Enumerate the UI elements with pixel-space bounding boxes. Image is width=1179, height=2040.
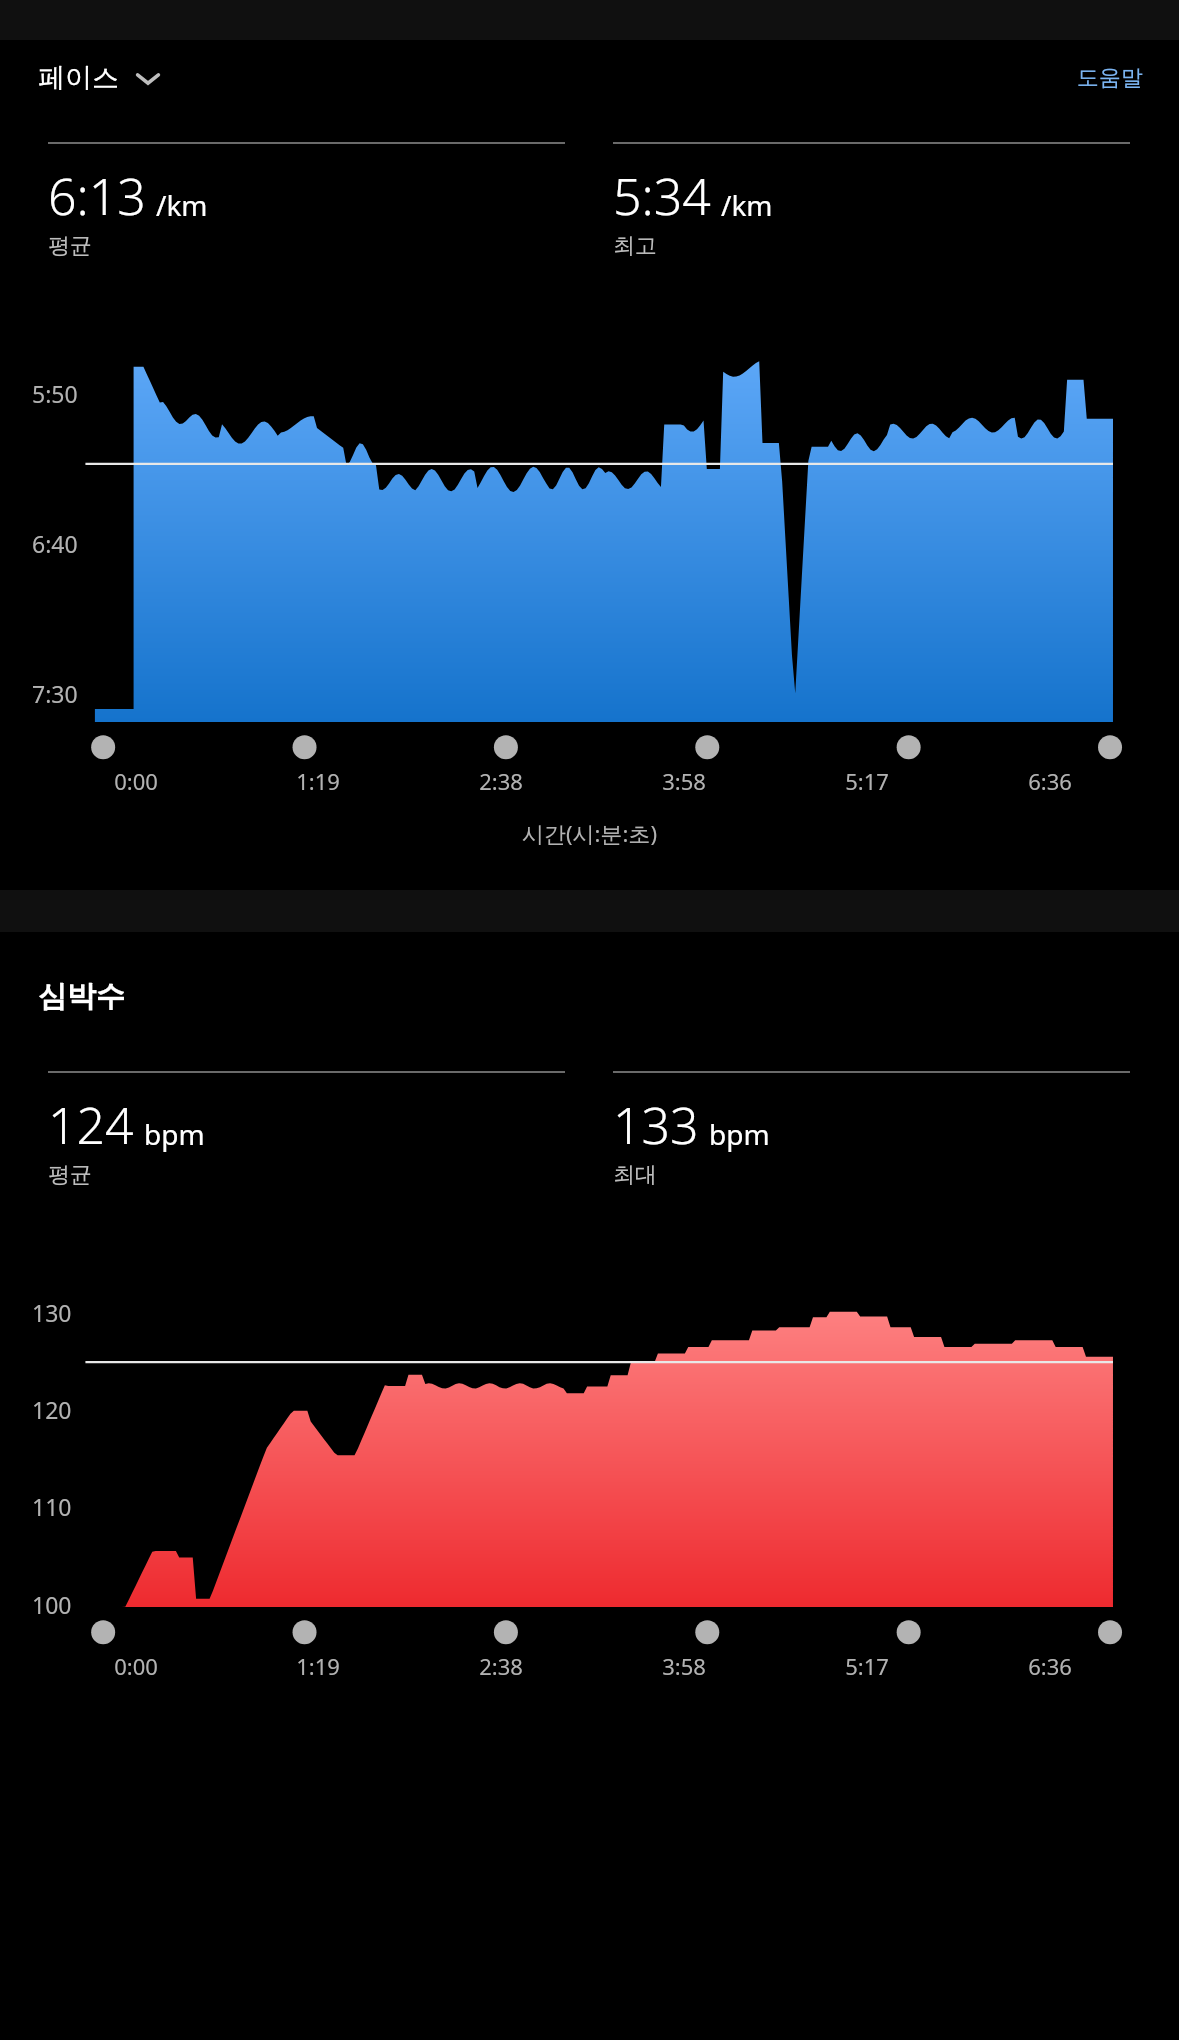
staticText: 7:30 <box>32 678 78 709</box>
staticText: bpm <box>709 1115 770 1153</box>
staticText: 평균 <box>48 232 92 260</box>
staticText: 최대 <box>613 1161 657 1189</box>
staticText: 6:36 <box>1028 1651 1072 1681</box>
staticText: 3:58 <box>662 1651 706 1681</box>
staticText: 도움말 <box>1077 64 1143 92</box>
staticText: 2:38 <box>479 1651 523 1681</box>
button[interactable]: 133 <box>613 1071 1130 1189</box>
staticText: 심박수 <box>38 978 125 1015</box>
staticText: 6:40 <box>32 528 78 559</box>
button[interactable]: 124 <box>48 1071 565 1189</box>
staticText: 0:00 <box>114 1651 158 1681</box>
staticText: 1:19 <box>296 1651 340 1681</box>
button[interactable]: 페이스 <box>34 55 165 101</box>
staticText: 3:58 <box>662 766 706 796</box>
staticText: 2:38 <box>479 766 523 796</box>
button[interactable]: 도움말 <box>1069 56 1151 100</box>
staticText: 시간(시:분:초) <box>522 818 657 848</box>
staticText: 5:34 <box>613 162 711 230</box>
staticText: 5:17 <box>845 766 889 796</box>
staticText: /km <box>156 186 208 224</box>
button[interactable]: 5:34 <box>613 142 1130 260</box>
staticText: 1:19 <box>296 766 340 796</box>
staticText: /km <box>721 186 773 224</box>
staticText: 페이스 <box>38 61 119 95</box>
staticText: 0:00 <box>114 766 158 796</box>
button[interactable]: 6:13 <box>48 142 565 260</box>
staticText: 5:50 <box>32 378 78 409</box>
staticText: 최고 <box>613 232 657 260</box>
staticText: 124 <box>48 1091 134 1159</box>
staticText: 100 <box>32 1589 72 1620</box>
staticText: 평균 <box>48 1161 92 1189</box>
staticText: 110 <box>32 1491 72 1522</box>
staticText: 120 <box>32 1394 72 1425</box>
staticText: 5:17 <box>845 1651 889 1681</box>
staticText: 130 <box>32 1297 72 1328</box>
staticText: bpm <box>144 1115 205 1153</box>
staticText: 6:36 <box>1028 766 1072 796</box>
staticText: 133 <box>613 1091 699 1159</box>
staticText: 6:13 <box>48 162 146 230</box>
